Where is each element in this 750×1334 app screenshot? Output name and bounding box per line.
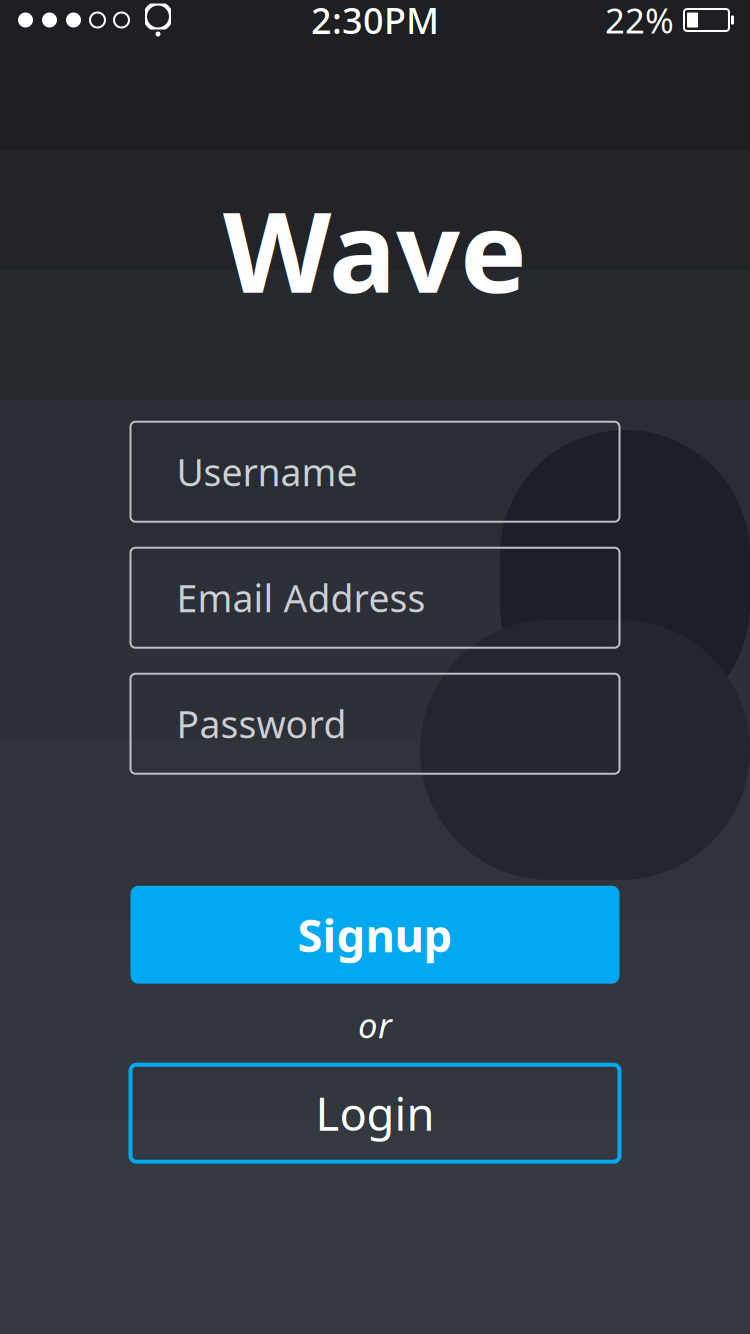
button[interactable]: Login <box>130 1065 619 1162</box>
button[interactable]: Username <box>130 422 619 522</box>
staticText: Wave <box>223 175 527 324</box>
staticText: Password <box>176 699 346 748</box>
button[interactable]: Password <box>130 674 619 774</box>
staticText: Email Address <box>176 573 425 622</box>
staticText: or <box>358 1002 392 1048</box>
button[interactable]: Signup <box>130 886 619 984</box>
button[interactable]: Email Address <box>130 548 619 648</box>
staticText: Signup <box>297 905 452 965</box>
staticText: 2:30PM <box>311 0 439 44</box>
staticText: 22% <box>605 0 674 43</box>
staticText: Username <box>176 447 357 496</box>
staticText: Login <box>315 1083 434 1143</box>
